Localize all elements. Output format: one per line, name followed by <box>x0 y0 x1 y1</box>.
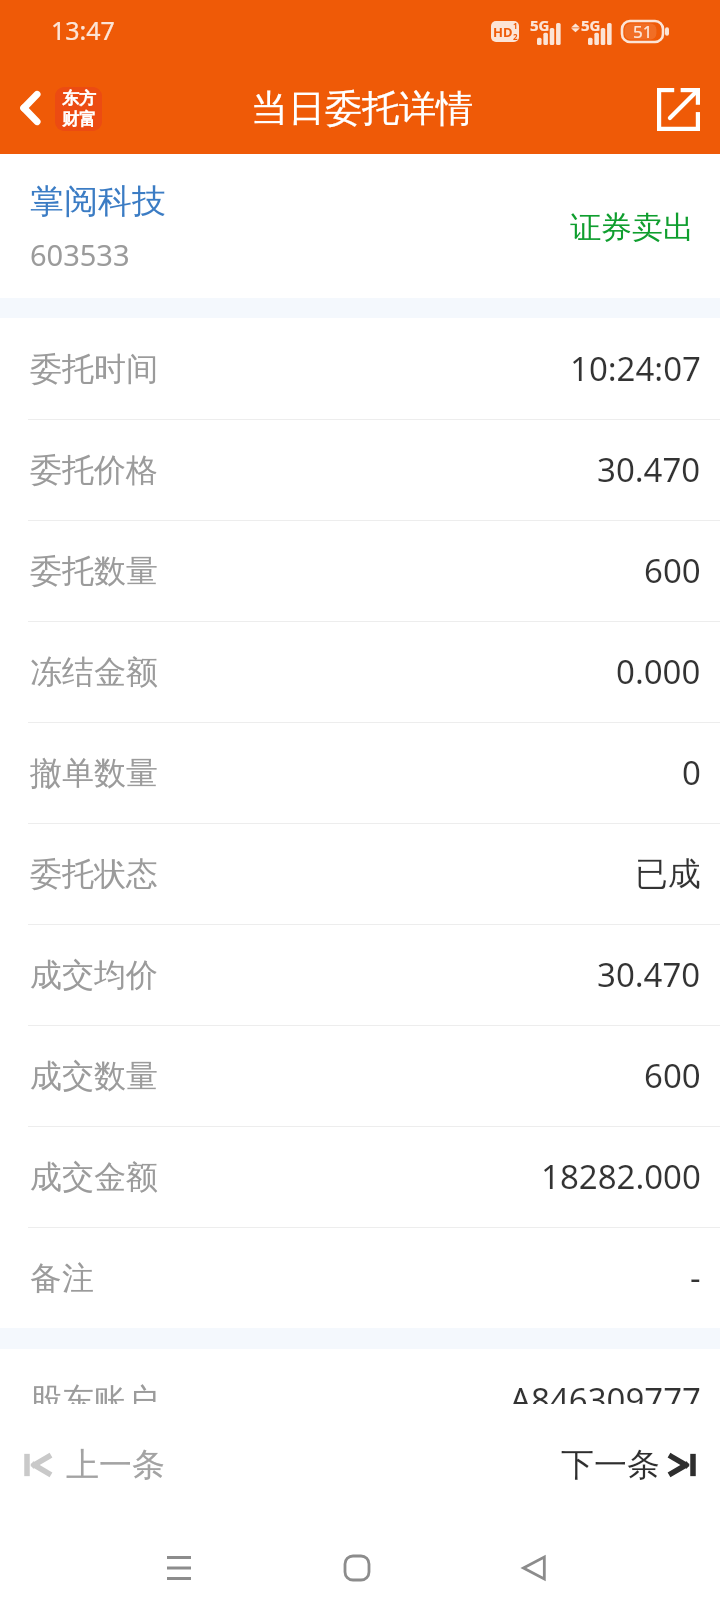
staticText: 0.000 <box>616 649 701 694</box>
staticText: 成交金额 <box>30 1157 158 1197</box>
other: Back <box>8 86 52 130</box>
staticText: 下一条 <box>561 1444 660 1486</box>
staticText: 委托数量 <box>30 551 158 591</box>
button[interactable]: 备注 <box>0 1227 720 1328</box>
button[interactable]: 成交数量 <box>0 1025 720 1126</box>
staticText: 冻结金额 <box>30 652 158 692</box>
staticText: 委托状态 <box>30 854 158 894</box>
staticText: 600 <box>644 1053 701 1098</box>
staticText: 当日委托详情 <box>251 85 473 132</box>
button[interactable]: Home <box>312 1523 402 1612</box>
button[interactable]: 冻结金额 <box>0 621 720 722</box>
staticText: 委托时间 <box>30 349 158 389</box>
staticText: 备注 <box>30 1258 94 1298</box>
staticText: 东方 <box>62 88 96 109</box>
staticText: 600 <box>644 548 701 593</box>
button[interactable]: 股东账户 <box>0 1349 720 1450</box>
staticText: HD <box>493 23 513 41</box>
staticText: 证券卖出 <box>570 208 694 247</box>
button[interactable]: 成交均价 <box>0 924 720 1025</box>
staticText: 603533 <box>30 235 130 274</box>
staticText: 1 <box>513 21 518 31</box>
staticText: 成交均价 <box>30 955 158 995</box>
staticText: 5G <box>530 15 550 35</box>
staticText: A846309777 <box>510 1377 701 1422</box>
staticText: 2 <box>513 31 518 41</box>
staticText: 委托价格 <box>30 450 158 490</box>
staticText: 30.470 <box>597 447 701 492</box>
staticText: 0 <box>682 750 701 795</box>
staticText: 成交数量 <box>30 1056 158 1096</box>
button[interactable]: 成交金额 <box>0 1126 720 1227</box>
button[interactable]: 下一条 <box>541 1444 720 1486</box>
button[interactable]: 委托时间 <box>0 318 720 419</box>
staticText: 上一条 <box>66 1444 165 1486</box>
button[interactable]: 委托价格 <box>0 419 720 520</box>
button[interactable]: 上一条 <box>0 1444 185 1486</box>
staticText: 10:24:07 <box>570 346 701 391</box>
staticText: 掌阅科技 <box>30 180 166 223</box>
button[interactable]: Share <box>637 87 720 130</box>
staticText: 5G <box>581 15 601 35</box>
button[interactable]: 委托数量 <box>0 520 720 621</box>
staticText: 30.470 <box>597 952 701 997</box>
button[interactable]: Back <box>0 86 114 130</box>
staticText: 51 <box>633 20 653 43</box>
staticText: 撤单数量 <box>30 753 158 793</box>
staticText: 股东账户 <box>30 1380 158 1420</box>
staticText: 13:47 <box>51 13 115 47</box>
button[interactable]: 撤单数量 <box>0 722 720 823</box>
staticText: 已成 <box>635 853 701 895</box>
button[interactable]: Back <box>489 1523 579 1612</box>
staticText: 财富 <box>62 109 96 130</box>
staticText: 18282.000 <box>541 1154 701 1199</box>
button[interactable]: 委托状态 <box>0 823 720 924</box>
staticText: - <box>690 1255 701 1300</box>
button[interactable]: Recent apps <box>134 1523 224 1612</box>
